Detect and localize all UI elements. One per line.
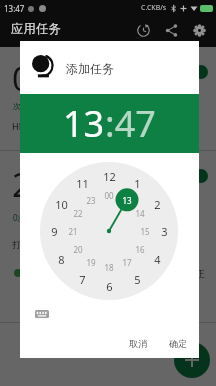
staticText: 11 [76,176,89,191]
staticText: 08 [12,56,50,101]
staticText: 20 [73,244,83,255]
staticText: :47 [105,99,156,148]
staticText: 00 [104,190,114,201]
staticText: 3 [161,224,168,239]
staticText: 6 [106,279,113,294]
staticText: 8 [58,252,65,267]
staticText: 19 [86,257,96,268]
staticText: 5 [134,272,141,287]
staticText: 16 [135,244,145,255]
staticText: 22 [73,208,83,219]
staticText: 0次 [13,212,26,223]
staticText: 21 [68,226,78,237]
staticText: 13:47 [4,3,25,14]
staticText: 应用任务 [11,21,61,37]
staticText: 确定 [169,338,187,349]
staticText: 23 [86,195,96,206]
staticText: 2 [154,197,161,212]
staticText: 14 [135,208,145,219]
button[interactable]: History [132,19,154,41]
staticText: 10 [55,197,68,212]
staticText: 7 [79,272,86,287]
staticText: 9 [51,224,58,239]
staticText: 13 [63,99,105,148]
button[interactable]: Settings [188,19,210,41]
button[interactable]: 24 [0,151,216,322]
staticText: HE [12,120,24,132]
button[interactable]: Share [160,19,182,41]
staticText: 正 [196,268,205,279]
staticText: 4 [154,252,161,267]
button[interactable]: 取消 [122,333,154,354]
staticText: 1 [134,176,141,191]
staticText: 17 [122,257,132,268]
staticText: 15 [140,226,150,237]
staticText: 次 [13,101,21,111]
staticText: 18 [104,262,114,273]
button[interactable]: 确定 [162,333,194,354]
staticText: 打卡 [12,239,30,250]
staticText: 添加任务 [66,61,114,76]
staticText: 12 [103,169,116,184]
staticText: C.CKB/s [141,3,167,13]
button[interactable]: 08 [0,47,216,150]
staticText: 24 [12,162,50,207]
staticText: 取消 [129,338,147,349]
button[interactable]: Switch to keyboard input [35,310,49,318]
button[interactable]: Add task [174,342,210,378]
staticText: 13 [122,195,132,206]
